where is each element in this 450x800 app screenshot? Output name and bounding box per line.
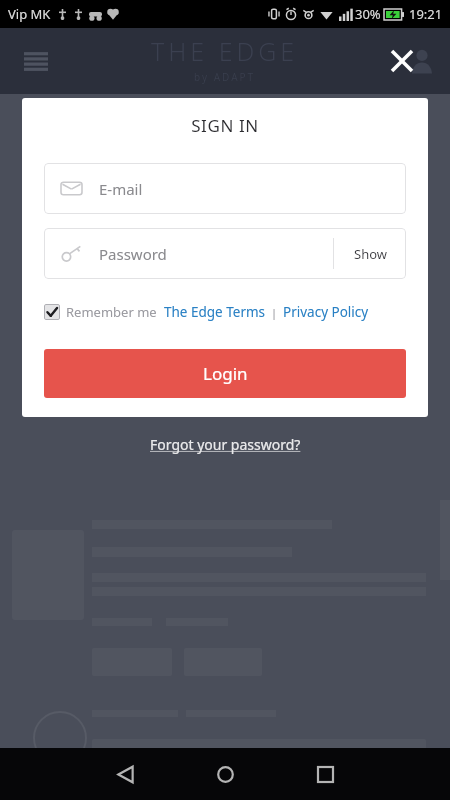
button[interactable]: Recents (293, 748, 357, 800)
button[interactable]: Show (334, 228, 406, 279)
staticText: Privacy Policy (283, 303, 369, 321)
staticText: 30% (355, 5, 381, 23)
button[interactable]: Close (380, 39, 424, 83)
button[interactable]: Back (93, 748, 157, 800)
button[interactable]: Login (44, 349, 406, 398)
staticText: Login (203, 362, 248, 385)
staticText: Remember me (66, 303, 157, 321)
staticText: THE EDGE (151, 34, 299, 68)
button[interactable]: Forgot your password? (22, 435, 428, 454)
button[interactable]: Menu (14, 39, 58, 83)
button[interactable]: Remember me (44, 303, 157, 321)
button[interactable]: Home (193, 748, 257, 800)
staticText: Vip MK (8, 5, 51, 23)
staticText: The Edge Terms (164, 303, 266, 321)
staticText: 19:21 (409, 5, 443, 23)
staticText: E-mail (99, 179, 143, 199)
button[interactable]: The Edge Terms (164, 303, 266, 321)
staticText: by ADAPT (194, 70, 256, 84)
button[interactable]: E-mail (44, 163, 406, 214)
staticText: | (271, 305, 278, 320)
button[interactable]: Account (400, 39, 444, 83)
staticText: Forgot your password? (150, 435, 301, 454)
staticText: SIGN IN (22, 114, 428, 137)
button[interactable]: Password (44, 243, 333, 264)
staticText: Password (99, 244, 167, 264)
staticText: Show (354, 245, 387, 263)
button[interactable]: Privacy Policy (283, 303, 369, 321)
